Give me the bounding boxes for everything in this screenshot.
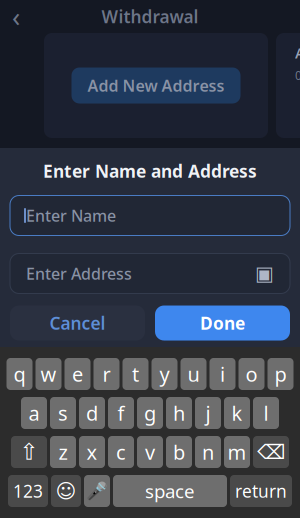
staticText: f xyxy=(117,400,124,426)
staticText: 🎤 xyxy=(86,481,108,501)
button[interactable]: z xyxy=(50,436,76,468)
button[interactable]: Emoji xyxy=(51,475,81,507)
button[interactable]: t xyxy=(122,358,148,390)
button[interactable]: return xyxy=(230,475,292,507)
button[interactable]: n xyxy=(195,436,221,468)
staticText: Enter Name and Address xyxy=(43,159,257,182)
button[interactable]: Enter Name xyxy=(10,195,290,235)
staticText: space xyxy=(145,479,195,503)
staticText: n xyxy=(202,439,214,465)
button[interactable]: o xyxy=(238,358,264,390)
button[interactable]: k xyxy=(224,397,250,429)
staticText: Cancel xyxy=(49,311,105,334)
button[interactable]: p xyxy=(267,358,293,390)
button[interactable]: a xyxy=(21,397,47,429)
staticText: l xyxy=(263,400,268,426)
button[interactable]: u xyxy=(180,358,206,390)
staticText: j xyxy=(205,400,210,426)
staticText: q xyxy=(13,361,25,387)
staticText: y xyxy=(159,361,169,387)
button[interactable]: Dictation xyxy=(84,475,110,507)
staticText: c xyxy=(116,439,126,465)
staticText: m xyxy=(227,439,246,465)
staticText: Alex xyxy=(295,43,300,62)
button[interactable]: m xyxy=(224,436,250,468)
button[interactable]: Shift xyxy=(11,436,47,468)
button[interactable]: Delete xyxy=(253,436,289,468)
staticText: a xyxy=(28,400,39,426)
button[interactable]: q xyxy=(6,358,32,390)
staticText: o xyxy=(245,361,257,387)
staticText: h xyxy=(173,400,185,426)
button[interactable]: Cancel xyxy=(10,305,145,340)
staticText: v xyxy=(145,439,155,465)
staticText: Withdrawal xyxy=(101,5,198,28)
staticText: 0x5c xyxy=(295,67,300,83)
button[interactable]: s xyxy=(50,397,76,429)
button[interactable]: w xyxy=(35,358,61,390)
button[interactable]: f xyxy=(108,397,134,429)
button[interactable]: i xyxy=(209,358,235,390)
staticText: t xyxy=(132,361,139,387)
staticText: ‹ xyxy=(12,0,20,34)
button[interactable]: x xyxy=(79,436,105,468)
staticText: ☺ xyxy=(55,480,76,502)
staticText: s xyxy=(58,400,68,426)
button[interactable]: space xyxy=(113,475,227,507)
staticText: b xyxy=(173,439,185,465)
staticText: ⌫ xyxy=(257,441,285,463)
button[interactable]: Enter Address xyxy=(10,253,290,293)
staticText: ▣ xyxy=(255,262,274,285)
button[interactable]: y xyxy=(151,358,177,390)
button[interactable]: 123 xyxy=(8,475,48,507)
staticText: u xyxy=(187,361,199,387)
staticText: Enter Name xyxy=(26,205,116,226)
staticText: g xyxy=(144,400,156,426)
button[interactable]: Back xyxy=(0,2,32,30)
button[interactable]: Done xyxy=(155,305,290,340)
staticText: Enter Address xyxy=(26,263,132,284)
button[interactable]: h xyxy=(166,397,192,429)
staticText: x xyxy=(86,439,97,465)
staticText: z xyxy=(58,439,67,465)
staticText: 123 xyxy=(13,479,43,502)
button[interactable]: v xyxy=(137,436,163,468)
staticText: return xyxy=(235,479,287,502)
staticText: r xyxy=(102,361,110,387)
staticText: k xyxy=(231,400,242,426)
button[interactable]: d xyxy=(79,397,105,429)
button[interactable]: r xyxy=(93,358,119,390)
button[interactable]: e xyxy=(64,358,90,390)
button[interactable]: l xyxy=(253,397,279,429)
staticText: p xyxy=(274,361,286,387)
staticText: ⇧ xyxy=(19,439,38,465)
staticText: Done xyxy=(200,311,245,334)
button[interactable]: c xyxy=(108,436,134,468)
button[interactable]: j xyxy=(195,397,221,429)
staticText: e xyxy=(72,361,83,387)
button[interactable]: b xyxy=(166,436,192,468)
staticText: d xyxy=(86,400,98,426)
button[interactable]: g xyxy=(137,397,163,429)
button[interactable]: Add New Address xyxy=(71,67,240,103)
staticText: i xyxy=(220,361,225,387)
staticText: Add New Address xyxy=(87,75,224,96)
staticText: w xyxy=(40,361,56,387)
